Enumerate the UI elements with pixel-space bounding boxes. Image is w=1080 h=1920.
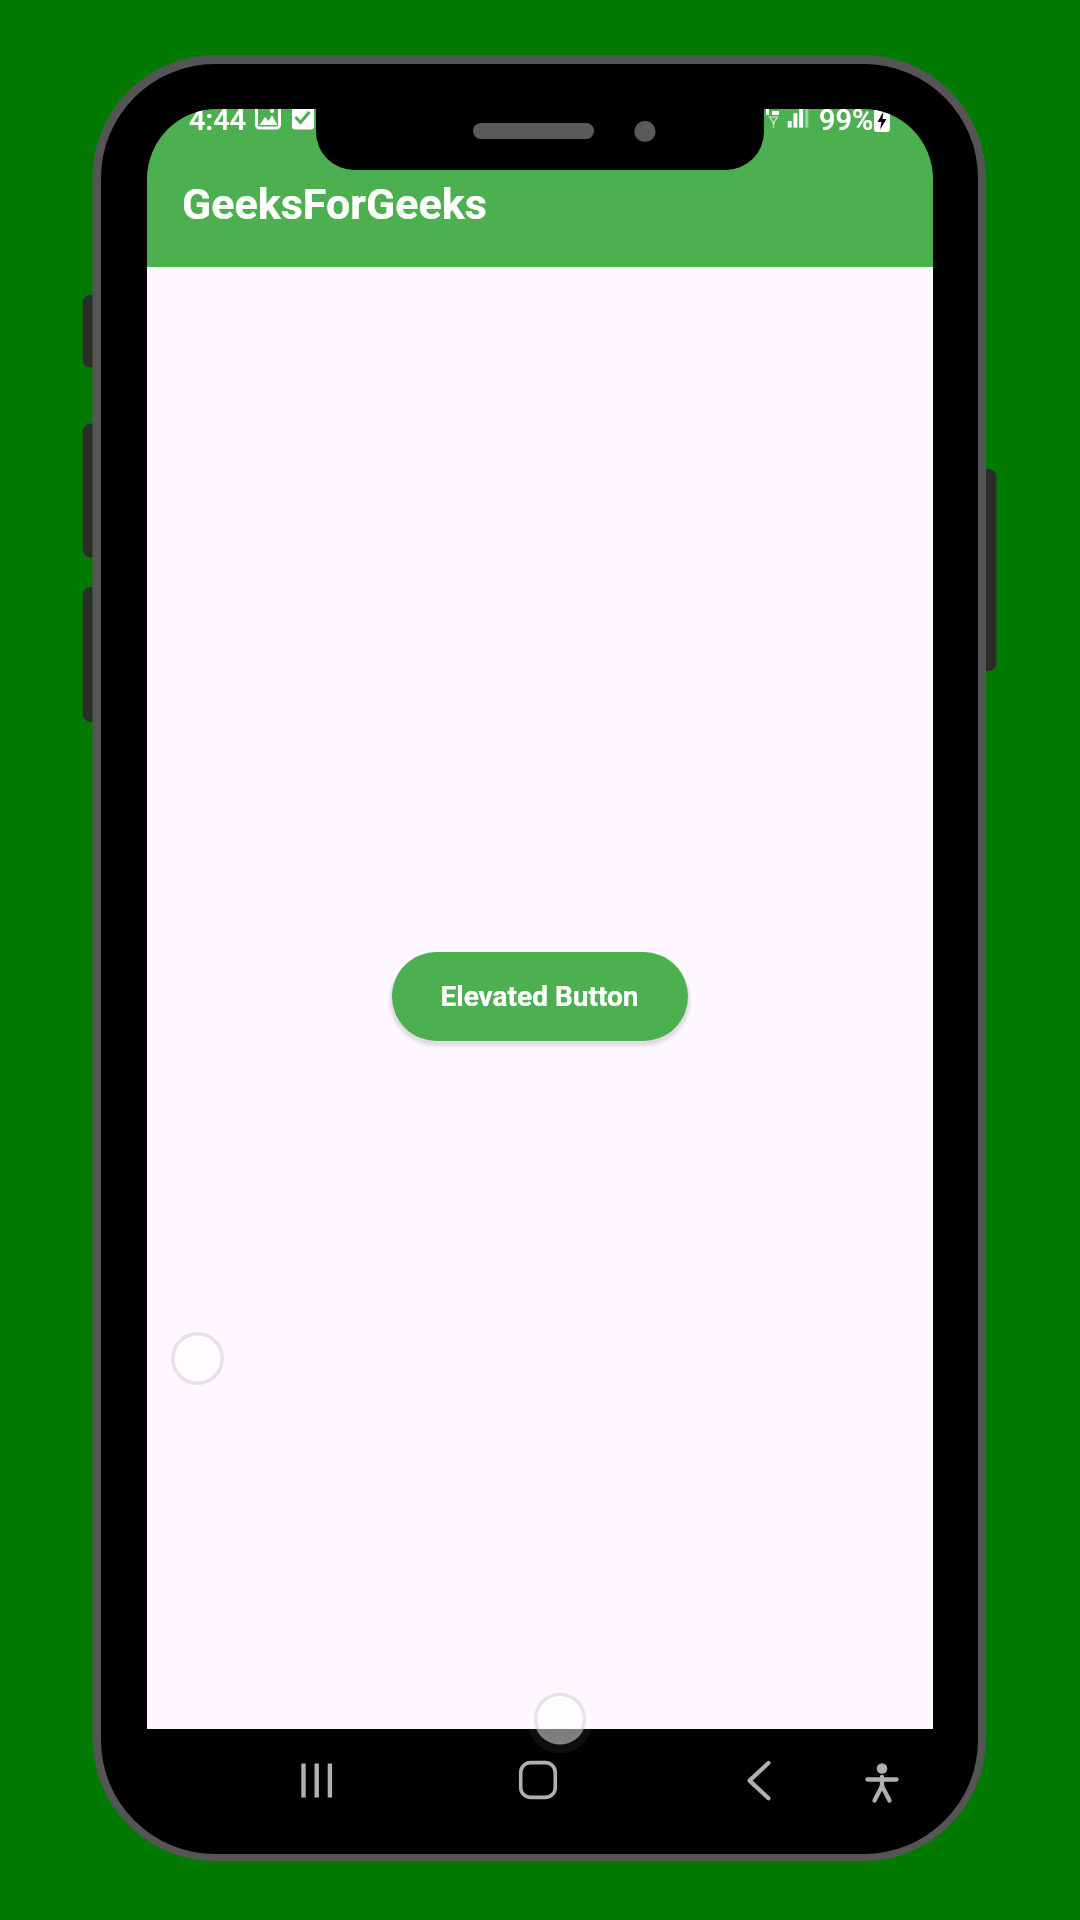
button[interactable] [392,952,688,1041]
button[interactable]: Back [697,1740,815,1820]
button[interactable]: Home [476,1740,594,1820]
button[interactable]: Accessibility [820,1740,938,1820]
button[interactable]: Floating bubble [171,1332,224,1385]
button[interactable]: Recent apps [255,1740,373,1820]
